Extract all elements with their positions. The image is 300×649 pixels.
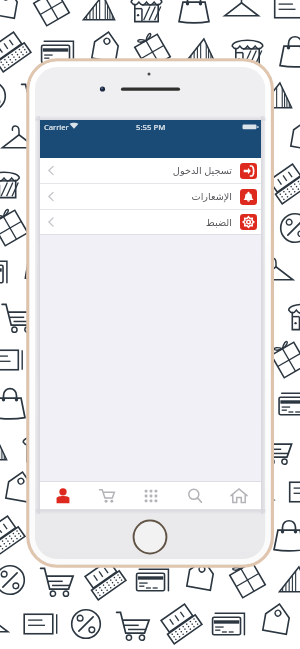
button[interactable]: الضبط [40, 210, 261, 234]
button[interactable]: Search [173, 482, 217, 509]
staticText: تسجيل الدخول [172, 164, 232, 177]
staticText: الإشعارات [191, 191, 232, 202]
button[interactable]: Cart [85, 482, 129, 509]
button[interactable]: Categories [129, 482, 173, 509]
staticText: Carrier [44, 122, 69, 132]
staticText: 5:55 PM [136, 122, 166, 133]
staticText: الضبط [205, 217, 232, 228]
button[interactable]: Profile [40, 482, 85, 509]
button[interactable]: الإشعارات [40, 184, 261, 209]
button[interactable]: Home [217, 482, 261, 509]
button[interactable]: تسجيل الدخول [40, 158, 261, 183]
